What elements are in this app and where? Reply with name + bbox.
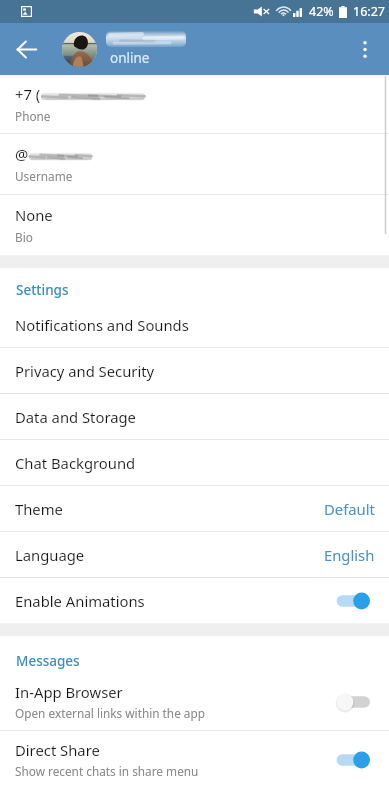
staticText: Username	[15, 168, 73, 184]
staticText: In-App Browser	[15, 682, 123, 702]
button[interactable]	[331, 690, 371, 714]
staticText: Notifications and Sounds	[15, 315, 189, 335]
button[interactable]: Notifications and Sounds	[0, 302, 389, 347]
staticText: 42%	[309, 3, 334, 20]
staticText: Direct Share	[15, 740, 100, 760]
staticText: Bio	[15, 229, 33, 245]
button[interactable]: Theme	[0, 486, 389, 531]
button[interactable]: None	[0, 195, 389, 255]
staticText: +7 (	[15, 84, 41, 104]
button[interactable]	[331, 589, 371, 613]
staticText: Data and Storage	[15, 407, 136, 427]
button[interactable]: Data and Storage	[0, 394, 389, 439]
button[interactable]: More options	[341, 25, 389, 73]
staticText: Language	[15, 545, 85, 565]
button[interactable]	[331, 748, 371, 772]
staticText: Open external links within the app	[15, 705, 206, 721]
staticText: Privacy and Security	[15, 361, 155, 381]
button[interactable]: +7 (	[0, 75, 389, 133]
button[interactable]: @	[0, 134, 389, 194]
staticText: 16:27	[353, 3, 385, 20]
staticText: Messages	[16, 652, 80, 670]
staticText: online	[110, 49, 150, 67]
button[interactable]: In-App Browser	[0, 673, 389, 730]
staticText: Theme	[15, 499, 63, 519]
button[interactable]: Direct Share	[0, 731, 389, 788]
staticText: English	[324, 545, 375, 565]
staticText: Show recent chats in share menu	[15, 763, 199, 779]
staticText: Settings	[16, 281, 69, 299]
staticText: None	[15, 205, 53, 225]
staticText: Enable Animations	[15, 591, 145, 611]
button[interactable]: Language	[0, 532, 389, 577]
button[interactable]: Chat Background	[0, 440, 389, 485]
staticText: Phone	[15, 108, 51, 124]
button[interactable]: Privacy and Security	[0, 348, 389, 393]
button[interactable]: Enable Animations	[0, 578, 389, 623]
staticText: Default	[324, 499, 375, 519]
button[interactable]: Back	[2, 25, 50, 73]
staticText: Chat Background	[15, 453, 136, 473]
staticText: @	[15, 144, 29, 164]
